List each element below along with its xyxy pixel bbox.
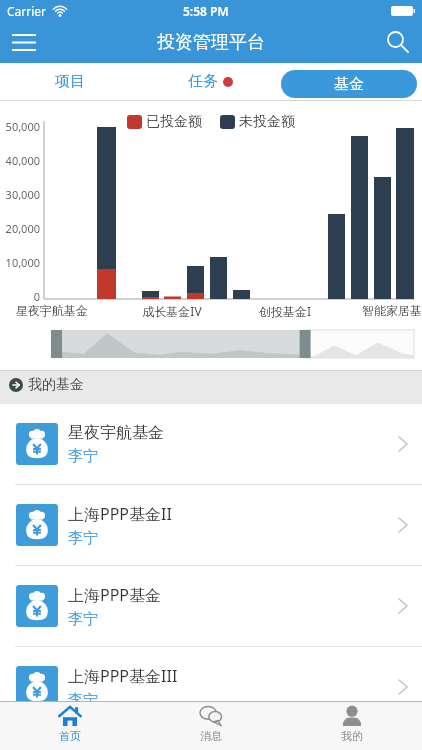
staticText: 李宁 (68, 529, 98, 548)
staticText: 李宁 (68, 610, 98, 629)
staticText: 上海PPP基金 (68, 584, 162, 606)
staticText: Carrier (7, 3, 47, 19)
staticText: 星夜宇航基金 (68, 423, 164, 443)
staticText: 投资管理平台 (157, 31, 265, 54)
staticText: 上海PPP基金II (68, 503, 172, 525)
button[interactable]: 首页 (0, 702, 140, 750)
staticText: 成长基金IV (122, 303, 222, 319)
staticText: 30,000 (0, 187, 40, 202)
staticText: 智能家居基金 (348, 303, 422, 318)
staticText: 创投基金I (235, 303, 335, 319)
staticText: 未投金额 (239, 113, 295, 131)
staticText: 星夜宇航基金 (2, 303, 102, 318)
staticText: 已投金额 (146, 113, 202, 131)
staticText: 40,000 (0, 153, 40, 168)
staticText: 50,000 (0, 119, 40, 134)
button[interactable]: 任务 (140, 63, 281, 100)
staticText: 任务 (188, 72, 218, 91)
staticText: 我的 (341, 729, 363, 743)
staticText: 我的基金 (28, 376, 84, 394)
button[interactable]: 消息 (140, 702, 281, 750)
button[interactable]: 项目 (0, 63, 140, 100)
staticText: 0 (0, 289, 40, 304)
staticText: 10,000 (0, 255, 40, 270)
staticText: 消息 (200, 729, 222, 743)
button[interactable]: 基金 (281, 70, 417, 98)
button[interactable]: 上海PPP基金III (0, 647, 422, 728)
staticText: 20,000 (0, 221, 40, 236)
staticText: 基金 (334, 75, 364, 94)
button[interactable]: 星夜宇航基金 (0, 404, 422, 485)
staticText: 项目 (55, 72, 85, 91)
staticText: 5:58 PM (183, 3, 229, 19)
button[interactable]: 上海PPP基金 (0, 566, 422, 647)
button[interactable] (382, 26, 414, 58)
staticText: 李宁 (68, 691, 98, 710)
staticText: 李宁 (68, 447, 98, 466)
button[interactable]: 上海PPP基金II (0, 485, 422, 566)
staticText: 上海PPP基金III (68, 665, 178, 687)
staticText: 首页 (59, 729, 81, 743)
button[interactable] (6, 24, 42, 60)
button[interactable]: 我的 (281, 702, 422, 750)
